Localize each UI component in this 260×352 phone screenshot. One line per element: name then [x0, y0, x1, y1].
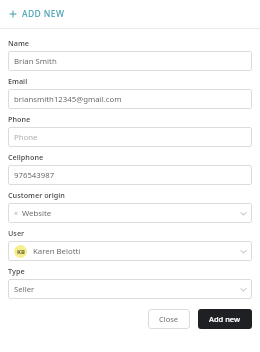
staticText: Karen Belotti: [33, 246, 81, 257]
button[interactable]: ADD NEW: [0, 0, 260, 28]
staticText: briansmith12345@gmail.com: [14, 94, 122, 105]
other: Open User dropdown: [240, 248, 247, 255]
button[interactable]: 976543987: [8, 165, 252, 185]
staticText: Close: [159, 314, 179, 324]
button[interactable]: Seller: [8, 279, 252, 299]
button[interactable]: Add new: [198, 309, 252, 329]
staticText: Seller: [14, 284, 35, 295]
staticText: KB: [17, 248, 25, 256]
staticText: Add new: [209, 314, 241, 324]
button[interactable]: briansmith12345@gmail.com: [8, 89, 252, 109]
staticText: Customer origin: [8, 190, 65, 200]
staticText: Phone: [8, 114, 31, 124]
staticText: Name: [8, 38, 30, 48]
staticText: User: [8, 228, 25, 238]
other: Open Customer origin dropdown: [240, 210, 247, 217]
button[interactable]: Close: [148, 309, 190, 329]
staticText: ×: [14, 209, 19, 219]
button[interactable]: Phone: [8, 127, 252, 147]
staticText: Brian Smith: [14, 56, 57, 67]
staticText: Cellphone: [8, 152, 44, 162]
staticText: Website: [22, 208, 52, 219]
button[interactable]: ×: [8, 203, 252, 223]
button[interactable]: KB: [8, 241, 252, 261]
staticText: ADD NEW: [22, 8, 65, 20]
other: Open Type dropdown: [240, 286, 247, 293]
staticText: Phone: [14, 132, 38, 143]
staticText: Email: [8, 76, 28, 86]
staticText: 976543987: [14, 170, 55, 181]
staticText: Type: [8, 266, 25, 276]
button[interactable]: Brian Smith: [8, 51, 252, 71]
